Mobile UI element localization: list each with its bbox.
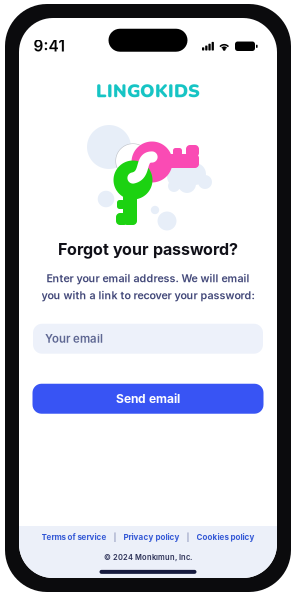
button[interactable]: Terms of service: [40, 529, 107, 545]
staticText: 9:41: [33, 37, 64, 55]
staticText: Send email: [116, 391, 180, 406]
staticText: Cookies policy: [196, 532, 254, 542]
staticText: Forgot your password?: [58, 240, 238, 259]
staticText: Terms of service: [41, 532, 106, 542]
staticText: Privacy policy: [123, 532, 179, 542]
button[interactable]: Send email: [32, 384, 263, 414]
button[interactable]: Cookies policy: [195, 529, 255, 545]
staticText: LINGOKIDS: [96, 79, 200, 104]
staticText: you with a link to recover your password…: [41, 289, 254, 302]
staticText: © 2024 Monkimun, Inc.: [104, 553, 192, 562]
staticText: Enter your email address. We will email: [46, 272, 249, 285]
staticText: Your email: [45, 332, 103, 346]
staticText: |: [186, 532, 189, 542]
button[interactable]: Privacy policy: [122, 529, 180, 545]
staticText: |: [113, 532, 116, 542]
